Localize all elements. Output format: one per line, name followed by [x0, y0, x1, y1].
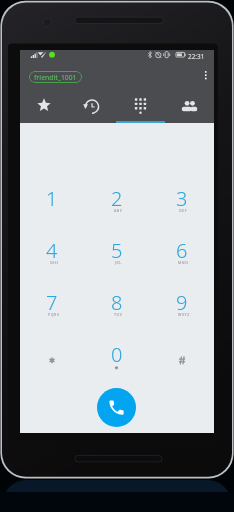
- button[interactable]: Recents: [68, 88, 116, 123]
- button[interactable]: 3: [149, 182, 214, 234]
- button[interactable]: 1: [20, 182, 84, 234]
- button[interactable]: Contacts: [165, 88, 214, 123]
- staticText: WXYZ: [178, 312, 190, 317]
- staticText: 8: [111, 289, 123, 316]
- staticText: 9: [176, 289, 188, 316]
- button[interactable]: 0: [84, 338, 149, 390]
- button[interactable]: 8: [84, 286, 149, 338]
- button[interactable]: [20, 338, 84, 390]
- button[interactable]: 5: [84, 234, 149, 286]
- staticText: 2: [111, 185, 123, 212]
- staticText: ABC: [114, 208, 123, 213]
- button[interactable]: 7: [20, 286, 84, 338]
- staticText: 22:31: [188, 52, 205, 61]
- staticText: 7: [46, 289, 58, 316]
- button[interactable]: 4: [20, 234, 84, 286]
- staticText: 5: [111, 237, 123, 264]
- staticText: friendit_1001: [34, 73, 77, 82]
- button[interactable]: Call: [97, 388, 136, 427]
- staticText: 6: [176, 237, 188, 264]
- button[interactable]: [149, 338, 214, 390]
- staticText: JKL: [115, 260, 122, 265]
- button[interactable]: 9: [149, 286, 214, 338]
- button[interactable]: 2: [84, 182, 149, 234]
- staticText: MNO: [178, 260, 189, 265]
- staticText: TUV: [114, 312, 123, 317]
- button[interactable]: friendit_1001: [29, 71, 82, 83]
- staticText: DEF: [179, 208, 188, 213]
- staticText: GHI: [50, 260, 59, 265]
- staticText: 3: [176, 185, 188, 212]
- staticText: 0: [111, 341, 123, 368]
- button[interactable]: 6: [149, 234, 214, 286]
- button[interactable]: Favorites: [20, 88, 68, 123]
- staticText: 4: [46, 237, 58, 264]
- button[interactable]: More options: [194, 62, 214, 88]
- staticText: 1: [46, 185, 58, 212]
- button[interactable]: Keypad: [116, 88, 165, 123]
- staticText: PQRS: [48, 312, 60, 317]
